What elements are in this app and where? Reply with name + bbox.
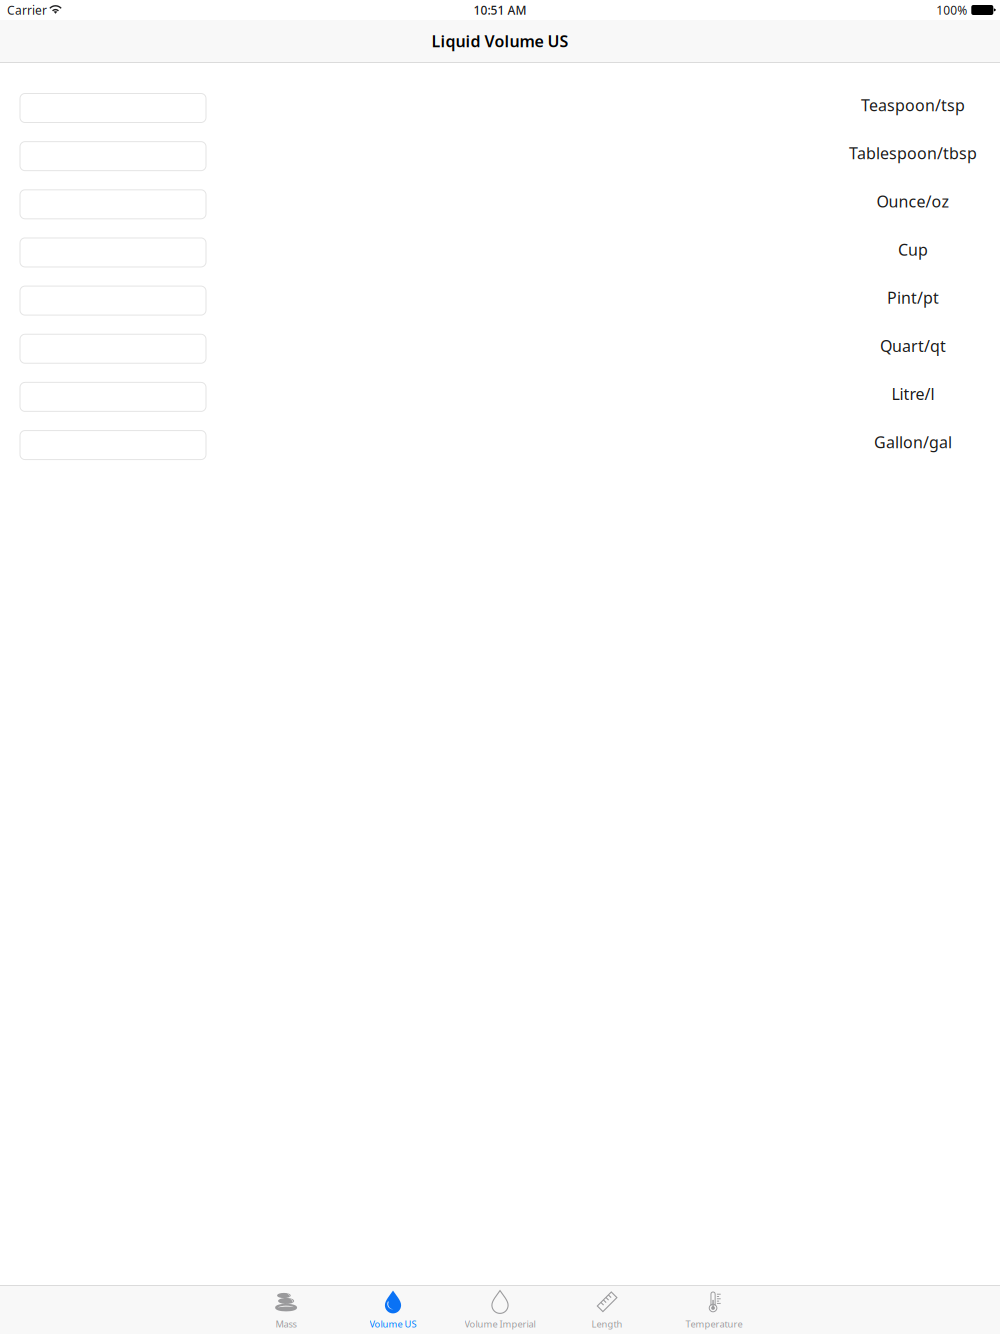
button[interactable]: Length <box>553 1286 660 1334</box>
button[interactable]: Temperature <box>660 1286 767 1334</box>
staticText: Mass <box>275 1318 296 1330</box>
staticText: Volume Imperial <box>464 1318 535 1330</box>
staticText: 100% <box>936 2 967 18</box>
button[interactable] <box>20 382 206 411</box>
button[interactable] <box>20 190 206 219</box>
button[interactable] <box>20 238 206 267</box>
staticText: Teaspoon/tsp <box>861 94 965 116</box>
staticText: Length <box>591 1318 622 1330</box>
button[interactable] <box>20 142 206 171</box>
staticText: Liquid Volume US <box>431 30 568 52</box>
button[interactable]: Mass <box>232 1286 339 1334</box>
button[interactable] <box>20 430 206 459</box>
button[interactable]: Volume US <box>339 1286 446 1334</box>
staticText: Litre/l <box>891 383 934 404</box>
staticText: 10:51 AM <box>473 2 526 18</box>
staticText: Gallon/gal <box>874 431 952 453</box>
button[interactable] <box>20 286 206 315</box>
staticText: Temperature <box>685 1318 742 1330</box>
staticText: Quart/qt <box>880 335 946 356</box>
button[interactable] <box>20 334 206 363</box>
staticText: Carrier <box>7 2 47 18</box>
staticText: Volume US <box>369 1318 416 1330</box>
staticText: Pint/pt <box>887 287 939 308</box>
staticText: Tablespoon/tbsp <box>849 142 977 164</box>
button[interactable]: Volume Imperial <box>446 1286 553 1334</box>
staticText: Cup <box>898 239 928 260</box>
staticText: Ounce/oz <box>876 191 949 212</box>
